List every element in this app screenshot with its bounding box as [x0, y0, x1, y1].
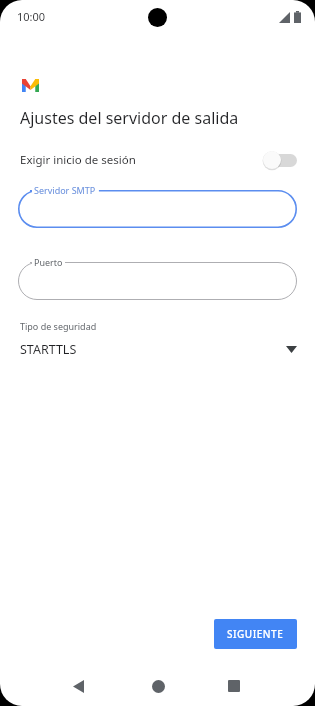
staticText: SIGUIENTE [227, 627, 284, 641]
staticText: Ajustes del servidor de salida [20, 107, 239, 129]
staticText: 10:00 [17, 9, 46, 24]
staticText: Tipo de seguridad [20, 320, 97, 332]
button[interactable]: Atrás [62, 670, 94, 702]
button[interactable]: Tipo de seguridad [0, 320, 315, 358]
button[interactable]: Aplicaciones recientes [218, 670, 250, 702]
button[interactable]: Exigir inicio de sesión [0, 145, 315, 175]
staticText: Puerto [34, 256, 63, 268]
staticText: STARTTLS [20, 341, 286, 358]
button[interactable]: Inicio [142, 670, 174, 702]
button[interactable]: Exigir inicio de sesión [263, 150, 297, 170]
staticText: Exigir inicio de sesión [20, 152, 263, 168]
staticText: Servidor SMTP [34, 184, 96, 196]
other: Expandir tipo de seguridad [286, 346, 297, 353]
button[interactable]: SIGUIENTE [214, 619, 297, 649]
button[interactable]: Puerto [18, 256, 297, 300]
button[interactable]: Servidor SMTP [18, 184, 297, 228]
